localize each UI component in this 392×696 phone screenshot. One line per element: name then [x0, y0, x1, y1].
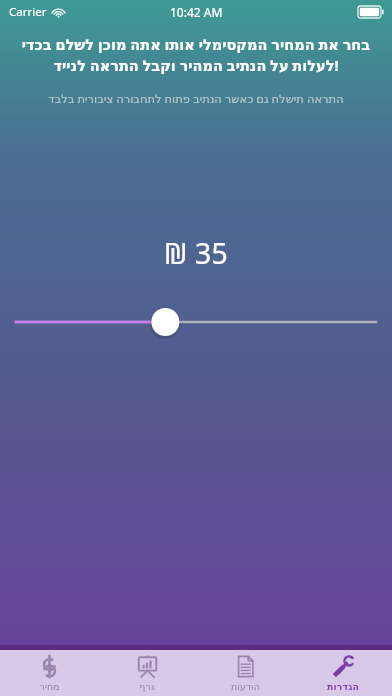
staticText: 10:42 AM	[170, 4, 223, 20]
button[interactable]: מחיר	[0, 655, 98, 692]
staticText: גרף	[139, 681, 155, 692]
staticText: Carrier	[9, 4, 47, 20]
button[interactable]: הודעות	[196, 655, 294, 692]
button[interactable]	[0, 302, 392, 342]
button[interactable]: הגדרות	[294, 655, 392, 692]
staticText: הגדרות	[327, 681, 359, 692]
staticText: ₪ 35	[0, 233, 392, 272]
staticText: התראה תישלח גם כאשר הנתיב פתוח לתחבורה צ…	[12, 91, 380, 107]
staticText: מחיר	[39, 681, 60, 692]
button[interactable]: גרף	[98, 655, 196, 692]
staticText: בחר את המחיר המקסימלי אותו אתה מוכן לשלם…	[16, 34, 376, 75]
staticText: הודעות	[231, 681, 260, 692]
